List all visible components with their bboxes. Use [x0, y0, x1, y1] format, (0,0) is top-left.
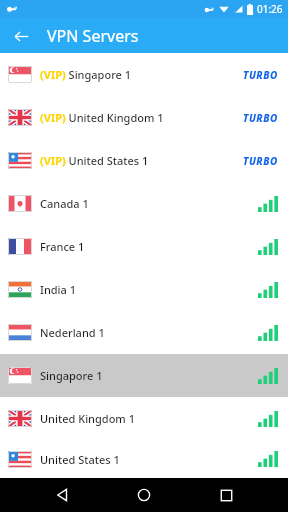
button[interactable]: Canada 1 [0, 182, 288, 225]
button[interactable]: Singapore 1 [0, 354, 288, 397]
staticText: (VIP) Singapore 1 [40, 67, 132, 82]
button[interactable]: India 1 [0, 268, 288, 311]
staticText: United States 1 [40, 452, 120, 467]
staticText: (VIP) United States 1 [40, 153, 149, 168]
button[interactable]: Nederland 1 [0, 311, 288, 354]
staticText: TURBO [243, 68, 278, 82]
button[interactable]: France 1 [0, 225, 288, 268]
staticText: Singapore 1 [40, 368, 103, 383]
staticText: 01:26 [257, 2, 283, 16]
staticText: (VIP) United Kingdom 1 [40, 110, 164, 125]
staticText: TURBO [243, 154, 278, 168]
button[interactable]: United Kingdom 1 [0, 397, 288, 440]
staticText: Canada 1 [40, 196, 89, 211]
staticText: Nederland 1 [40, 325, 105, 340]
button[interactable]: Home [124, 478, 164, 512]
staticText: United Kingdom 1 [40, 411, 135, 426]
staticText: France 1 [40, 239, 85, 254]
staticText: VPN Servers [47, 25, 139, 47]
button[interactable]: Back [6, 21, 36, 51]
button[interactable]: (VIP) United Kingdom 1 [0, 96, 288, 139]
button[interactable]: United States 1 [0, 440, 288, 478]
button[interactable]: Recents [206, 478, 246, 512]
button[interactable]: Back [42, 478, 82, 512]
staticText: India 1 [40, 282, 77, 297]
button[interactable]: (VIP) Singapore 1 [0, 53, 288, 96]
button[interactable]: (VIP) United States 1 [0, 139, 288, 182]
staticText: TURBO [243, 111, 278, 125]
